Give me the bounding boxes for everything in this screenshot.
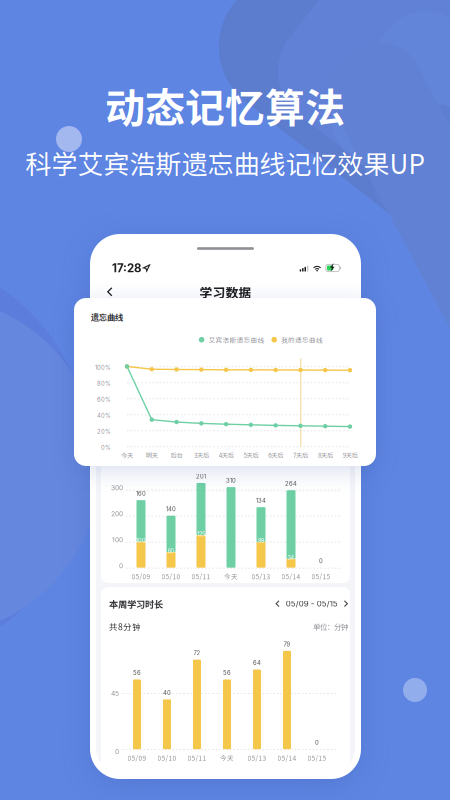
staticText: 05/13 [251,572,270,581]
staticText: 7天后 [293,450,308,459]
staticText: 56 [223,669,231,676]
staticText: 我的遗忘曲线 [281,335,323,344]
staticText: 100 [136,537,146,544]
staticText: 60% [97,396,111,403]
staticText: 201 [196,473,206,480]
staticText: 0 [115,747,119,755]
staticText: 60 [167,548,174,555]
staticText: 125 [197,531,205,538]
staticText: 140 [166,506,176,513]
staticText: 共8分钟 [109,620,141,633]
staticText: 05/14 [281,572,300,581]
staticText: 134 [256,497,266,504]
staticText: 05/09 [127,753,146,763]
staticText: 本周学习时长 [109,597,163,610]
staticText: 05/09 - 05/15 [286,599,338,608]
staticText: 0 [319,558,323,565]
staticText: 05/15 [311,572,330,581]
staticText: 160 [136,490,146,497]
staticText: 8天后 [318,450,333,459]
staticText: 动态记忆算法 [105,76,345,134]
staticText: 0 [315,739,319,746]
staticText: 264 [285,480,297,487]
button[interactable]: 返回 [96,280,124,304]
staticText: 100 [112,536,123,544]
staticText: 05/15 [307,753,326,763]
staticText: 明天 [146,450,158,459]
staticText: 9天后 [343,450,358,459]
staticText: 今天 [224,572,238,581]
staticText: 单位：分钟 [313,621,348,632]
staticText: 05/10 [157,753,176,763]
staticText: 05/11 [187,753,206,763]
staticText: 34 [287,555,294,561]
staticText: 今天 [121,450,133,459]
staticText: 45 [111,689,119,697]
staticText: 99 [258,538,264,544]
staticText: 100% [95,364,111,371]
staticText: 56 [133,669,141,676]
staticText: 40 [163,689,171,696]
staticText: 今天 [220,753,234,763]
staticText: 20% [97,428,111,435]
staticText: 40% [97,412,111,419]
staticText: 72 [193,649,200,657]
staticText: 0 [119,562,123,570]
staticText: 300 [111,484,123,492]
staticText: 05/13 [247,753,266,763]
staticText: 后台 [171,450,183,459]
staticText: 艾宾浩斯遗忘曲线 [208,335,264,344]
button[interactable]: 05/09 - 05/15 [275,599,348,608]
staticText: 64 [253,659,261,666]
staticText: 05/09 [131,572,150,581]
staticText: 学习数据 [199,283,251,301]
staticText: 6天后 [268,450,283,459]
staticText: 05/14 [277,753,296,763]
staticText: 17:28 [112,261,141,275]
staticText: 80% [97,380,111,387]
staticText: 3天后 [194,450,209,459]
staticText: 310 [226,477,236,484]
staticText: 05/11 [191,572,210,581]
staticText: 79 [283,641,290,648]
staticText: 5天后 [243,450,258,459]
staticText: 05/10 [161,572,180,581]
staticText: 4天后 [219,450,234,459]
staticText: 0% [101,444,111,451]
staticText: 200 [111,510,123,518]
staticText: 科学艾宾浩斯遗忘曲线记忆效果UP [25,144,424,181]
staticText: 遗忘曲线 [91,311,123,323]
